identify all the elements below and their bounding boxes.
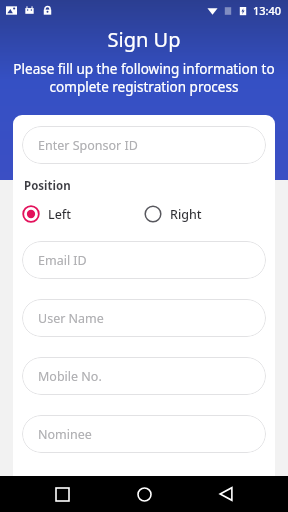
button[interactable]: Home bbox=[124, 476, 164, 512]
button[interactable]: Enter Sponsor ID bbox=[22, 126, 266, 164]
staticText: Please fill up the following information… bbox=[12, 60, 276, 96]
staticText: Position bbox=[24, 178, 71, 194]
staticText: 13:40 bbox=[253, 3, 282, 18]
staticText: Nominee bbox=[38, 426, 92, 443]
button[interactable]: Email ID bbox=[22, 241, 266, 279]
button[interactable]: User Name bbox=[22, 299, 266, 337]
button[interactable]: Recent apps bbox=[42, 476, 82, 512]
staticText: Mobile No. bbox=[38, 368, 102, 385]
staticText: Right bbox=[170, 206, 202, 223]
button[interactable]: Left bbox=[22, 203, 144, 225]
button[interactable]: Mobile No. bbox=[22, 357, 266, 395]
button[interactable]: Right bbox=[144, 203, 202, 225]
staticText: Sign Up bbox=[0, 26, 288, 53]
button[interactable]: Back bbox=[206, 476, 246, 512]
button[interactable]: Nominee bbox=[22, 415, 266, 453]
staticText: Email ID bbox=[38, 252, 87, 269]
staticText: Left bbox=[48, 206, 72, 223]
staticText: User Name bbox=[38, 310, 104, 327]
staticText: Enter Sponsor ID bbox=[38, 137, 138, 154]
